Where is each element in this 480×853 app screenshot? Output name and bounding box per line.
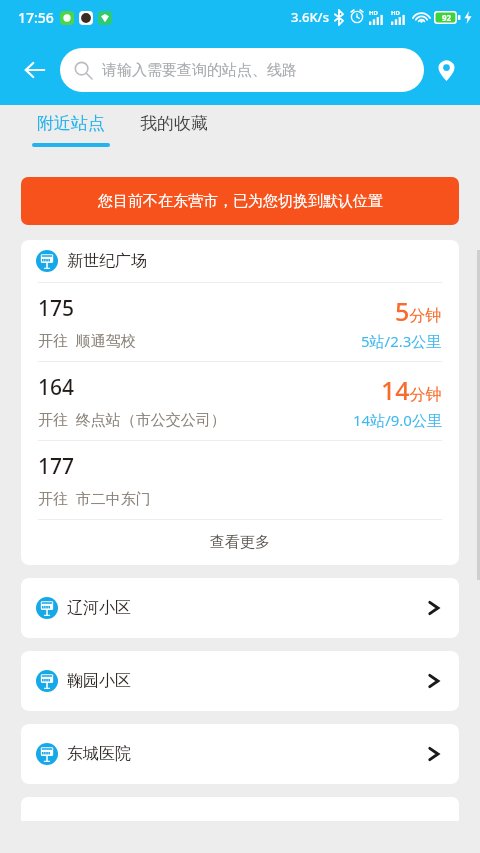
staticText: 17:56	[18, 8, 54, 27]
button[interactable]: 我的收藏	[138, 113, 210, 134]
button[interactable]: 新世纪广场	[21, 240, 459, 282]
staticText: 5分钟	[395, 294, 442, 328]
staticText: 175	[38, 294, 75, 323]
staticText: 164	[38, 373, 75, 402]
staticText: 14分钟	[381, 373, 442, 407]
staticText: 您目前不在东营市，已为您切换到默认位置	[98, 192, 383, 211]
staticText: 鞠园小区	[67, 671, 427, 691]
staticText: 14站/9.0公里	[353, 410, 442, 430]
button[interactable]: 东城医院	[21, 724, 459, 784]
staticText: 查看更多	[210, 533, 270, 552]
staticText: 新世纪广场	[67, 251, 147, 271]
staticText: 我的收藏	[140, 113, 208, 134]
button[interactable]: 您目前不在东营市，已为您切换到默认位置	[21, 177, 459, 225]
staticText: HD	[391, 9, 400, 17]
staticText: 东城医院	[67, 744, 427, 764]
staticText: HD	[369, 9, 378, 17]
button[interactable]: Location	[424, 48, 468, 92]
button[interactable]: 164	[21, 362, 459, 440]
staticText: 开往 顺通驾校	[38, 330, 136, 350]
staticText: 辽河小区	[67, 598, 427, 618]
staticText: 5站/2.3公里	[361, 331, 442, 351]
button[interactable]: 附近站点	[30, 113, 112, 147]
button[interactable]: Back	[14, 49, 56, 91]
staticText: 开往 市二中东门	[38, 488, 151, 508]
staticText: 请输入需要查询的站点、线路	[102, 61, 297, 80]
button[interactable]: 请输入需要查询的站点、线路	[60, 48, 424, 92]
staticText: 附近站点	[37, 113, 105, 134]
staticText: 开往 终点站（市公交公司）	[38, 409, 226, 429]
staticText: 3.6K/s	[291, 8, 329, 26]
staticText: 177	[38, 452, 75, 481]
button[interactable]: 175	[21, 283, 459, 361]
button[interactable]: 辽河小区	[21, 578, 459, 638]
button[interactable]: 鞠园小区	[21, 651, 459, 711]
button[interactable]: 177	[21, 441, 459, 519]
staticText: 92	[442, 12, 452, 23]
button[interactable]: 查看更多	[21, 520, 459, 565]
